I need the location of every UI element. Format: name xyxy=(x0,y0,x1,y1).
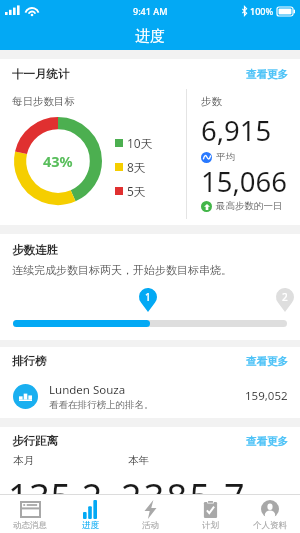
staticText: 动态消息 xyxy=(13,520,47,531)
staticText: 十一月统计 xyxy=(12,67,70,81)
staticText: 100% xyxy=(250,5,274,17)
staticText: 43% xyxy=(43,151,73,171)
button[interactable]: News feed xyxy=(0,494,60,533)
button[interactable]: Profile xyxy=(240,494,300,533)
staticText: 排行榜 xyxy=(12,354,47,368)
other: Profile xyxy=(261,500,279,518)
staticText: 15,066 xyxy=(201,163,288,200)
other: Plans xyxy=(203,500,218,518)
button[interactable]: 查看更多 xyxy=(246,435,288,448)
staticText: 步数连胜 xyxy=(12,243,58,257)
button[interactable]: Plans xyxy=(180,494,240,533)
button[interactable]: Activity xyxy=(120,494,180,533)
staticText: 进度 xyxy=(135,27,165,46)
staticText: 9:41 AM xyxy=(133,5,168,17)
button[interactable]: Lunden Souza xyxy=(0,378,300,414)
button[interactable]: Progress xyxy=(60,494,120,533)
staticText: 5天 xyxy=(127,183,146,199)
staticText: 159,052 xyxy=(245,388,288,404)
staticText: 看看在排行榜上的排名。 xyxy=(49,399,154,411)
staticText: 10天 xyxy=(127,135,153,151)
other: Progress xyxy=(83,500,97,519)
staticText: 进度 xyxy=(82,520,99,531)
other: Activity xyxy=(144,500,157,519)
staticText: 6,915 xyxy=(201,112,272,149)
staticText: 个人资料 xyxy=(253,520,287,531)
staticText: 2 xyxy=(282,290,288,304)
staticText: 2385.7 xyxy=(121,472,247,521)
staticText: 最高步数的一日 xyxy=(216,200,283,212)
staticText: 步行距离 xyxy=(12,434,58,448)
staticText: 活动 xyxy=(142,520,159,531)
staticText: 8天 xyxy=(127,159,146,175)
other: News feed xyxy=(21,502,40,517)
staticText: 每日步数目标 xyxy=(12,95,75,108)
staticText: Lunden Souza xyxy=(49,382,126,398)
button[interactable]: 查看更多 xyxy=(246,355,288,368)
staticText: 本年 xyxy=(128,454,149,467)
staticText: 计划 xyxy=(202,520,219,531)
staticText: 1 xyxy=(145,290,151,304)
staticText: 步数 xyxy=(201,95,222,108)
button[interactable]: 查看更多 xyxy=(246,68,288,81)
staticText: 平均 xyxy=(216,151,235,163)
staticText: 135.2 xyxy=(8,472,104,521)
staticText: 本月 xyxy=(13,454,34,467)
staticText: 连续完成步数目标两天，开始步数目标串烧。 xyxy=(12,263,232,277)
